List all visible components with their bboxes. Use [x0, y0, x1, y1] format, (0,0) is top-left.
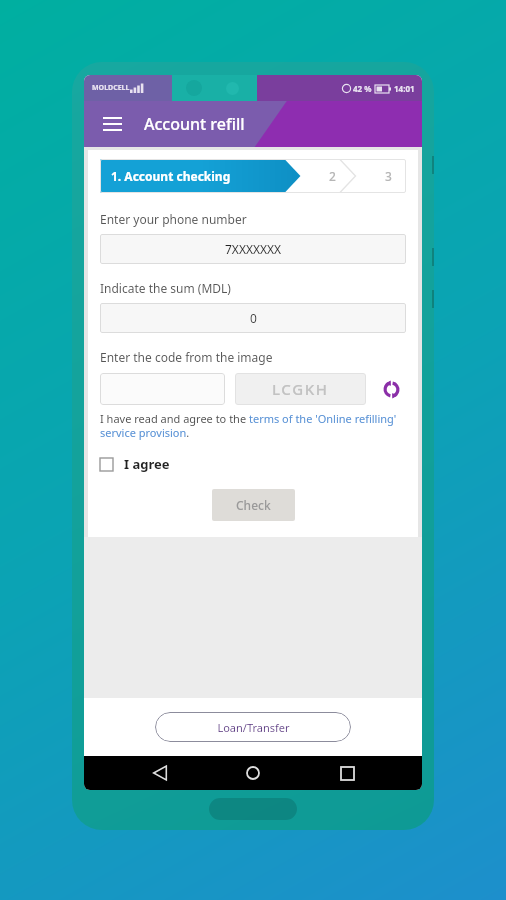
- staticText: Account refill: [144, 113, 245, 135]
- button[interactable]: Open navigation menu: [92, 104, 132, 144]
- staticText: Check: [236, 497, 271, 513]
- button[interactable]: Check: [212, 489, 295, 521]
- staticText: 14:01: [394, 83, 415, 94]
- button[interactable]: 7XXXXXXX: [100, 234, 406, 264]
- staticText: I have read and agree to the terms of th…: [100, 411, 406, 440]
- staticText: 2: [329, 168, 336, 184]
- button[interactable]: Recent apps: [329, 756, 365, 790]
- staticText: 42 %: [353, 83, 372, 94]
- staticText: 3: [385, 168, 392, 184]
- staticText: 1. Account checking: [111, 168, 231, 184]
- staticText: Enter the code from the image: [100, 349, 273, 365]
- staticText: Loan/Transfer: [217, 720, 290, 735]
- button[interactable]: I agree: [100, 453, 170, 475]
- button[interactable]: I have read and agree to the terms of th…: [100, 411, 406, 440]
- button[interactable]: 0: [100, 303, 406, 333]
- staticText: MOLDCELL: [92, 83, 130, 93]
- button[interactable]: Refresh captcha: [376, 374, 406, 404]
- button[interactable]: Loan/Transfer: [155, 712, 351, 742]
- staticText: 0: [250, 310, 257, 326]
- staticText: Indicate the sum (MDL): [100, 280, 231, 296]
- button[interactable]: Back: [142, 756, 178, 790]
- staticText: I agree: [124, 455, 170, 473]
- staticText: Enter your phone number: [100, 211, 247, 227]
- button[interactable]: Captcha code input: [100, 373, 225, 405]
- staticText: 7XXXXXXX: [225, 241, 282, 257]
- staticText: LCGKH: [272, 379, 329, 399]
- button[interactable]: Home: [235, 756, 271, 790]
